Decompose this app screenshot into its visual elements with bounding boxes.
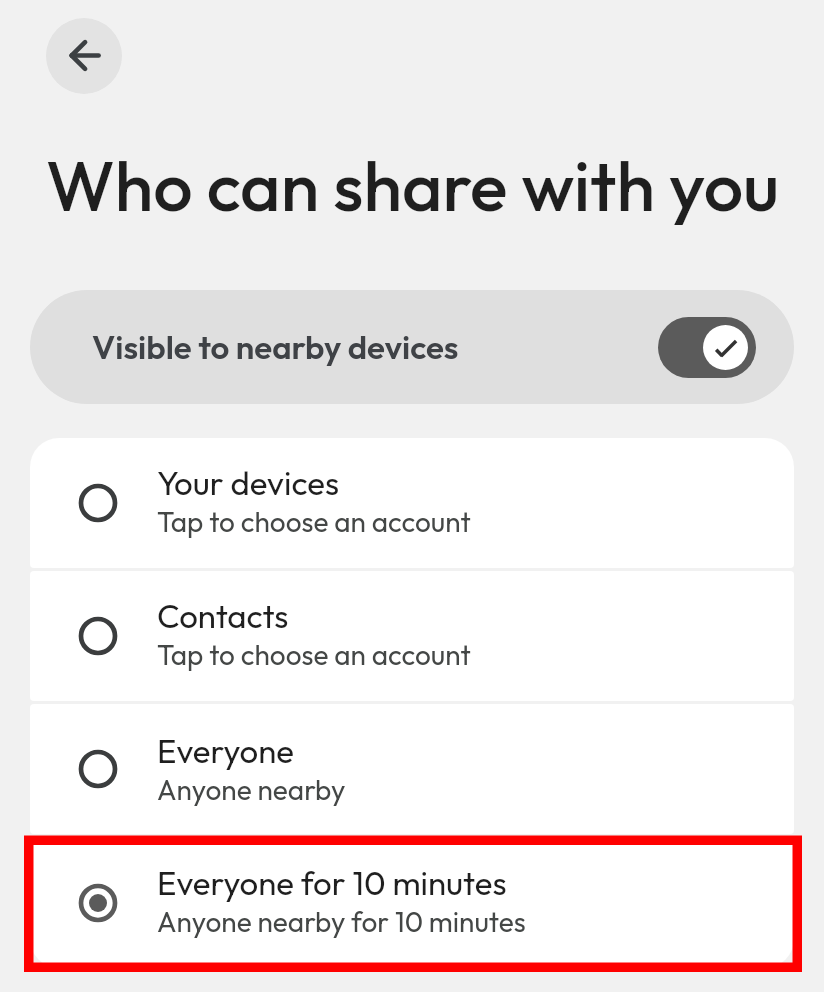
button[interactable]: Your devices [30, 438, 794, 568]
button[interactable]: Navigate up [46, 18, 122, 94]
staticText: Your devices [157, 462, 339, 504]
staticText: Tap to choose an account [157, 637, 471, 672]
staticText: Everyone [157, 730, 294, 772]
staticText: Anyone nearby [157, 772, 346, 807]
button[interactable]: Everyone [30, 704, 794, 834]
staticText: Everyone for 10 minutes [157, 862, 507, 904]
button[interactable]: Contacts [30, 571, 794, 701]
button[interactable]: Visible to nearby devices [30, 290, 794, 404]
staticText: Contacts [157, 595, 289, 637]
staticText: Anyone nearby for 10 minutes [157, 904, 526, 939]
staticText: Who can share with you [46, 141, 824, 229]
staticText: Visible to nearby devices [92, 326, 459, 368]
staticText: Tap to choose an account [157, 504, 471, 539]
button[interactable]: Everyone for 10 minutes [30, 838, 794, 968]
